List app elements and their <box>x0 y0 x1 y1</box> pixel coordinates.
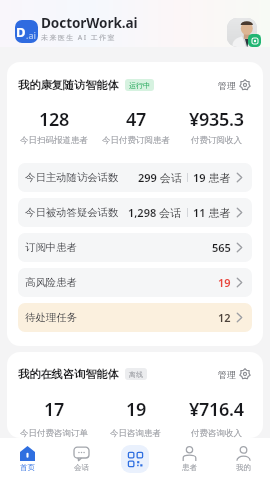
staticText: .ai <box>26 29 37 41</box>
staticText: 付费咨询收入 <box>191 428 242 438</box>
staticText: 47 <box>126 107 146 132</box>
staticText: ¥716.4 <box>189 397 244 422</box>
staticText: 会话 <box>74 463 89 472</box>
staticText: 付费订阅收入 <box>191 135 242 146</box>
button[interactable]: 待处理任务 <box>18 303 252 332</box>
button[interactable]: 今日主动随访会话数 <box>18 163 252 192</box>
button[interactable]: 今日被动答疑会话数 <box>18 198 252 227</box>
button[interactable]: ¥716.4 <box>176 397 257 438</box>
button[interactable]: 患者 <box>162 438 216 480</box>
staticText: 565 <box>212 240 231 255</box>
button[interactable]: DoctorWork logo <box>15 20 38 43</box>
button[interactable]: 首页 <box>0 438 54 480</box>
button[interactable]: 会话 <box>54 438 108 480</box>
staticText: 运行中 <box>129 81 150 90</box>
staticText: 我的康复随访智能体 <box>18 78 119 92</box>
staticText: 未来医生 AI 工作室 <box>41 33 116 43</box>
button[interactable]: 订阅中患者 <box>18 233 252 262</box>
staticText: 19 <box>126 397 146 422</box>
staticText: 12 <box>218 310 231 325</box>
staticText: 我的 <box>236 463 251 472</box>
staticText: 今日付费订阅患者 <box>102 135 170 146</box>
button[interactable]: Profile <box>227 18 257 47</box>
staticText: 待处理任务 <box>25 311 77 324</box>
staticText: 今日咨询患者 <box>110 428 161 438</box>
button[interactable]: ¥935.3 <box>176 107 257 146</box>
staticText: 128 <box>39 107 69 132</box>
staticText: 19 患者 <box>193 170 231 185</box>
button[interactable]: 高风险患者 <box>18 268 252 297</box>
staticText: 今日主动随访会话数 <box>25 171 119 184</box>
staticText: 首页 <box>20 463 35 472</box>
staticText: DoctorWork.ai <box>41 13 138 32</box>
button[interactable]: 17 <box>13 397 95 438</box>
staticText: 我的在线咨询智能体 <box>18 367 119 381</box>
button[interactable]: 扫一扫 <box>108 438 162 480</box>
button[interactable]: 管理 <box>217 367 252 381</box>
staticText: 1,298 会话 <box>128 205 182 220</box>
staticText: 订阅中患者 <box>25 241 77 254</box>
button[interactable]: 管理 <box>217 78 252 92</box>
button[interactable]: 47 <box>95 107 176 146</box>
staticText: 管理 <box>218 80 236 91</box>
staticText: 11 患者 <box>193 205 231 220</box>
staticText: 今日被动答疑会话数 <box>25 206 119 219</box>
button[interactable]: 128 <box>13 107 95 146</box>
staticText: 19 <box>218 275 231 290</box>
staticText: 离线 <box>129 370 143 379</box>
button[interactable]: 我的 <box>216 438 270 480</box>
staticText: 高风险患者 <box>25 276 77 289</box>
staticText: 患者 <box>182 463 197 472</box>
staticText: D <box>16 23 26 41</box>
staticText: 今日扫码报道患者 <box>20 135 88 146</box>
button[interactable]: 19 <box>95 397 176 438</box>
staticText: ¥935.3 <box>189 107 244 132</box>
staticText: 299 会话 <box>138 170 182 185</box>
staticText: 管理 <box>218 369 236 380</box>
staticText: 今日付费咨询订单 <box>20 428 88 438</box>
staticText: 17 <box>44 397 64 422</box>
